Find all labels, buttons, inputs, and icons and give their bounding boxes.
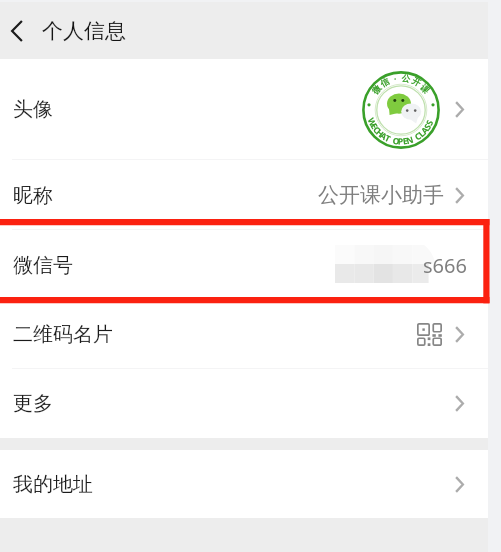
button[interactable] xyxy=(0,230,488,300)
button[interactable]: 二维码名片 xyxy=(0,300,488,369)
staticText: 微信号 xyxy=(13,253,73,278)
staticText: 我的地址 xyxy=(13,472,93,497)
staticText: 更多 xyxy=(13,391,53,416)
staticText: 二维码名片 xyxy=(13,322,113,347)
button[interactable]: 昵称 xyxy=(0,160,488,230)
button[interactable]: Back xyxy=(0,2,33,59)
button[interactable]: 更多 xyxy=(0,369,488,438)
staticText: 公开课小助手 xyxy=(318,182,444,208)
button[interactable]: 我的地址 xyxy=(0,450,488,518)
staticText: s666 xyxy=(423,252,467,279)
staticText: 昵称 xyxy=(13,183,53,208)
button[interactable]: 头像 xyxy=(0,59,488,160)
staticText: 个人信息 xyxy=(42,18,126,44)
staticText: 头像 xyxy=(13,97,53,122)
